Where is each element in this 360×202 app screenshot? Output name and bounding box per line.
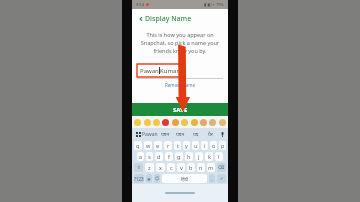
button[interactable]: Shift xyxy=(134,163,143,172)
button[interactable]: Emoji xyxy=(144,119,151,126)
staticText: q xyxy=(136,142,140,149)
staticText: Pawan xyxy=(142,131,158,138)
button[interactable]: Voice input xyxy=(218,130,226,138)
staticText: s xyxy=(148,153,151,160)
button[interactable]: n xyxy=(197,163,205,172)
button[interactable]: Emoji xyxy=(181,119,188,126)
button[interactable]: Backspace xyxy=(217,163,226,172)
button[interactable]: Emoji xyxy=(134,119,141,126)
staticText: w xyxy=(146,142,151,149)
button[interactable]: v xyxy=(177,163,185,172)
button[interactable]: g xyxy=(175,152,183,161)
button[interactable]: k xyxy=(205,152,213,161)
staticText: c xyxy=(170,164,173,171)
button[interactable]: पैर xyxy=(203,128,218,140)
button[interactable]: Enter xyxy=(217,174,226,183)
staticText: Kumar xyxy=(160,67,179,75)
button[interactable]: Language xyxy=(146,174,152,183)
staticText: b xyxy=(189,164,193,171)
button[interactable]: t xyxy=(174,141,181,150)
button[interactable]: i xyxy=(201,141,208,150)
button[interactable]: Back xyxy=(137,15,145,23)
staticText: ☺ xyxy=(155,176,160,181)
staticText: ?123 xyxy=(134,176,144,182)
button[interactable]: Emoji xyxy=(191,119,198,126)
button[interactable]: j xyxy=(195,152,203,161)
button[interactable]: x xyxy=(156,163,165,172)
staticText: y xyxy=(185,142,188,149)
button[interactable]: c xyxy=(167,163,175,172)
button[interactable]: पवन xyxy=(173,128,188,140)
staticText: हिंदी xyxy=(181,176,189,182)
button[interactable]: e xyxy=(154,141,162,150)
staticText: k xyxy=(208,153,211,160)
staticText: f xyxy=(168,153,170,160)
staticText: n xyxy=(199,164,203,171)
button[interactable]: पवन xyxy=(158,128,173,140)
button[interactable]: Emoji xyxy=(154,174,160,183)
staticText: v xyxy=(180,164,183,171)
button[interactable]: m xyxy=(207,163,215,172)
staticText: l xyxy=(218,153,220,160)
staticText: Display Name xyxy=(145,14,192,24)
staticText: g xyxy=(177,153,181,160)
button[interactable]: b xyxy=(187,163,195,172)
staticText: . xyxy=(211,176,213,182)
staticText: x xyxy=(159,164,162,171)
staticText: m xyxy=(208,164,214,171)
button[interactable]: d xyxy=(155,152,163,161)
button[interactable]: Emoji xyxy=(153,119,160,126)
staticText: p xyxy=(221,142,225,149)
button[interactable]: Space xyxy=(162,174,207,183)
button[interactable]: u xyxy=(192,141,199,150)
staticText: ⇧ xyxy=(137,165,141,170)
button[interactable]: Emoji xyxy=(209,119,216,126)
button[interactable]: Symbols xyxy=(134,174,144,183)
button[interactable]: h xyxy=(185,152,193,161)
staticText: ✓ xyxy=(220,176,224,181)
staticText: पवन xyxy=(161,131,170,138)
staticText: o xyxy=(212,142,216,149)
button[interactable]: p xyxy=(219,141,226,150)
staticText: पवन xyxy=(176,131,185,138)
staticText: r xyxy=(167,142,170,149)
staticText: i xyxy=(204,142,206,149)
staticText: d xyxy=(157,153,161,160)
button[interactable]: Back xyxy=(132,13,228,25)
button[interactable]: y xyxy=(183,141,190,150)
button[interactable]: पद xyxy=(188,128,203,140)
staticText: z xyxy=(148,164,151,171)
button[interactable]: Emoji xyxy=(172,119,179,126)
staticText: This is how you appear on Snapchat, so p… xyxy=(138,31,222,55)
button[interactable]: SAVE xyxy=(132,103,228,116)
button[interactable]: z xyxy=(145,163,154,172)
button[interactable]: Keyboard menu xyxy=(135,131,142,138)
button[interactable]: Pawan xyxy=(137,64,183,77)
button[interactable]: r xyxy=(164,141,172,150)
button[interactable]: Pawan xyxy=(142,128,158,140)
button[interactable]: q xyxy=(134,141,142,150)
staticText: ⌫ xyxy=(218,165,225,170)
button[interactable]: o xyxy=(210,141,217,150)
button[interactable]: f xyxy=(165,152,173,161)
button[interactable]: l xyxy=(215,152,223,161)
button[interactable]: s xyxy=(146,152,153,161)
staticText: पैर xyxy=(208,131,213,138)
staticText: SAVE xyxy=(173,106,188,114)
button[interactable]: Emoji xyxy=(200,119,207,126)
staticText: e xyxy=(156,142,160,149)
button[interactable]: w xyxy=(144,141,152,150)
staticText: h xyxy=(187,153,191,160)
staticText: j xyxy=(198,153,200,160)
staticText: 9:54 xyxy=(136,2,144,7)
button[interactable]: Period xyxy=(209,174,215,183)
staticText: a xyxy=(139,153,143,160)
button[interactable]: Emoji xyxy=(162,119,169,126)
button[interactable]: Remove name xyxy=(132,82,228,88)
staticText: t xyxy=(177,142,179,149)
staticText: ◧◧ ⌁ 79% xyxy=(204,2,224,7)
button[interactable]: a xyxy=(137,152,144,161)
button[interactable]: Emoji xyxy=(219,119,226,126)
staticText: u xyxy=(194,142,198,149)
staticText: पद xyxy=(193,131,199,138)
